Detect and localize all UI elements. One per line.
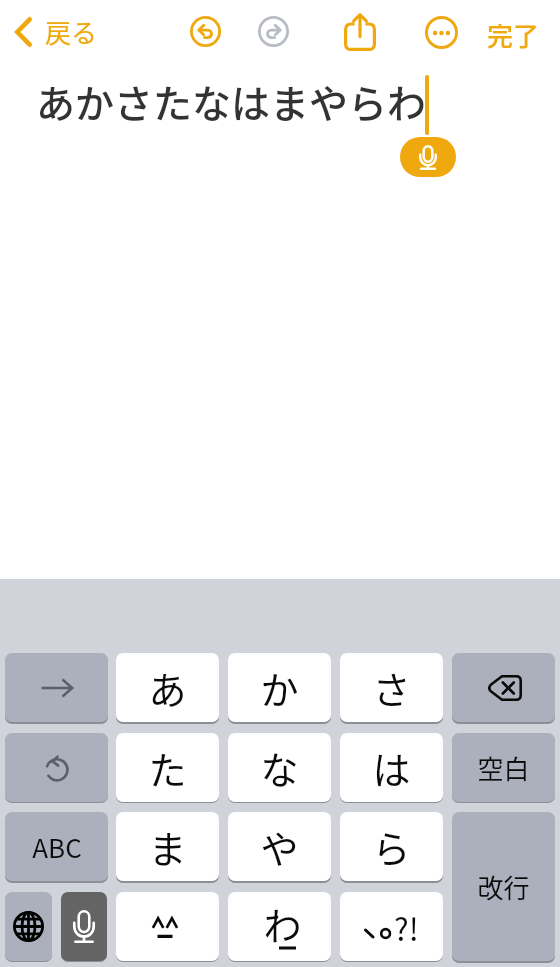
button[interactable]: や (228, 812, 331, 881)
staticText: な (260, 740, 299, 795)
button[interactable]: Undo (5, 733, 108, 802)
other: Delete (486, 674, 522, 702)
button[interactable]: た (116, 733, 219, 802)
staticText: 空白 (477, 749, 530, 787)
button[interactable]: Share (337, 9, 382, 54)
button[interactable]: Delete (452, 653, 555, 722)
button[interactable]: あ (116, 653, 219, 722)
staticText: あかさたなはまやらわ (36, 73, 427, 129)
other: Switch keyboard (13, 911, 44, 942)
staticText: ABC (32, 828, 82, 866)
button[interactable]: Dictation (400, 137, 456, 177)
staticText: か (260, 660, 299, 715)
other: Voice input (73, 910, 95, 943)
button[interactable]: 完了 (481, 9, 546, 61)
button[interactable]: Undo (183, 9, 228, 54)
button[interactable]: さ (340, 653, 443, 722)
staticText: さ (372, 660, 411, 715)
button[interactable]: ま (116, 812, 219, 881)
button[interactable]: 戻る (11, 9, 104, 55)
button[interactable]: Next candidate (5, 653, 108, 722)
staticText: あ (148, 660, 187, 715)
button[interactable]: は (340, 733, 443, 802)
staticText: 戻る (45, 13, 98, 51)
staticText: は (372, 740, 411, 795)
button[interactable]: ?! (340, 892, 443, 961)
button[interactable]: Redo (251, 9, 296, 54)
button[interactable]: Voice input (61, 892, 107, 961)
button[interactable]: ら (340, 812, 443, 881)
staticText: わ (263, 896, 302, 951)
staticText: 完了 (487, 16, 540, 54)
button[interactable]: 空白 (452, 733, 555, 802)
button[interactable]: More (419, 10, 464, 55)
button[interactable]: ABC (5, 812, 108, 881)
other: Next candidate (41, 677, 73, 699)
button[interactable]: わ (228, 892, 331, 961)
staticText: た (148, 740, 187, 795)
staticText: 改行 (477, 868, 530, 906)
button[interactable]: Switch keyboard (5, 892, 52, 961)
other: Undo (42, 753, 72, 783)
staticText: や (260, 819, 299, 874)
button[interactable]: 改行 (452, 812, 555, 961)
staticText: ?! (394, 905, 419, 950)
button[interactable]: な (228, 733, 331, 802)
staticText: ま (148, 819, 187, 874)
button[interactable]: か (228, 653, 331, 722)
button[interactable] (116, 892, 219, 961)
staticText: ら (372, 819, 411, 874)
